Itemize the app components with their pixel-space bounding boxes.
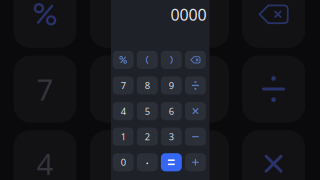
staticText: 0	[121, 156, 126, 168]
staticText: 9	[169, 79, 174, 92]
staticText: 7	[36, 69, 53, 108]
staticText: 8	[145, 79, 150, 92]
staticText: 1	[121, 130, 126, 143]
staticText: 5	[145, 105, 150, 117]
staticText: 6	[169, 105, 174, 117]
staticText: 7	[121, 79, 126, 92]
staticText: 4	[121, 105, 126, 117]
staticText: 2	[145, 130, 150, 143]
staticText: 4	[36, 144, 53, 180]
staticText: 0000	[170, 4, 206, 25]
staticText: 3	[169, 130, 174, 143]
